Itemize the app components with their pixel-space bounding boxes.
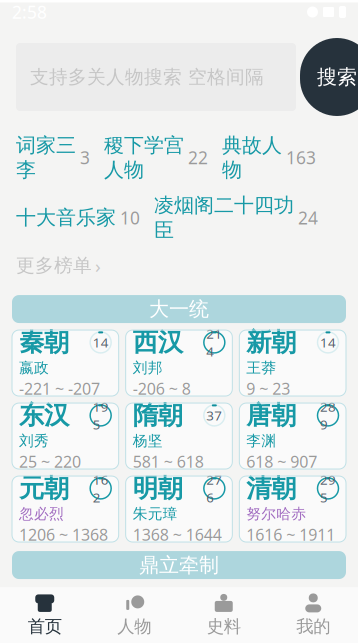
staticText: 214 <box>206 325 222 360</box>
button[interactable]: 清朝 <box>239 476 346 542</box>
staticText: 我的 <box>296 616 330 637</box>
staticText: 元朝 <box>19 473 69 504</box>
staticText: 295 <box>320 471 336 506</box>
button[interactable]: 东汉 <box>12 403 119 469</box>
button[interactable]: 明朝 <box>126 476 232 542</box>
button[interactable]: 唐朝 <box>239 403 346 469</box>
staticText: 276 <box>206 471 222 506</box>
button[interactable]: 西汉 <box>126 330 232 396</box>
staticText: 杨坚 <box>133 432 163 450</box>
staticText: 十大音乐家 <box>16 205 116 230</box>
staticText: 24 <box>298 206 318 229</box>
staticText: 清朝 <box>246 473 296 504</box>
staticText: 14 <box>320 334 336 351</box>
staticText: 37 <box>206 407 222 424</box>
staticText: -221 ~ -207 <box>19 378 100 399</box>
staticText: 289 <box>320 398 336 433</box>
staticText: 25 ~ 220 <box>19 451 81 472</box>
staticText: 163 <box>286 146 316 169</box>
button[interactable]: 隋朝 <box>126 403 232 469</box>
staticText: 10 <box>120 206 140 229</box>
button[interactable]: 凌烟阁二十四功臣 <box>154 193 318 242</box>
staticText: 史料 <box>207 616 241 637</box>
button[interactable]: 元朝 <box>12 476 119 542</box>
staticText: 2:58 <box>12 0 47 23</box>
staticText: 东汉 <box>19 400 69 431</box>
staticText: 3 <box>80 146 90 169</box>
staticText: › <box>95 253 101 278</box>
staticText: 刘秀 <box>19 432 49 450</box>
staticText: 大一统 <box>149 297 209 321</box>
staticText: 1616 ~ 1911 <box>246 524 335 545</box>
button[interactable]: 新朝 <box>239 330 346 396</box>
staticText: 王莽 <box>246 359 276 377</box>
staticText: 唐朝 <box>246 400 296 431</box>
staticText: 162 <box>93 471 109 506</box>
button[interactable]: 秦朝 <box>12 330 119 396</box>
button[interactable]: 史料 <box>179 589 268 641</box>
staticText: 词家三李 <box>16 133 76 182</box>
staticText: 秦朝 <box>19 327 69 358</box>
staticText: 努尔哈赤 <box>246 505 306 523</box>
staticText: 更多榜单 <box>16 254 92 277</box>
staticText: 凌烟阁二十四功臣 <box>154 193 294 242</box>
staticText: 195 <box>93 398 109 433</box>
staticText: 14 <box>93 334 109 351</box>
staticText: 618 ~ 907 <box>246 451 317 472</box>
staticText: 581 ~ 618 <box>133 451 204 472</box>
staticText: 嬴政 <box>19 359 49 377</box>
staticText: 首页 <box>28 616 62 637</box>
button[interactable]: 首页 <box>0 589 89 641</box>
button[interactable]: 更多榜单 <box>16 253 101 278</box>
staticText: 典故人物 <box>222 133 282 182</box>
button[interactable]: 典故人物 <box>222 133 316 182</box>
staticText: 朱元璋 <box>133 505 178 523</box>
staticText: 忽必烈 <box>19 505 64 523</box>
staticText: 1206 ~ 1368 <box>19 524 108 545</box>
staticText: 西汉 <box>133 327 183 358</box>
staticText: 22 <box>188 146 208 169</box>
button[interactable]: 搜索 <box>300 38 358 116</box>
button[interactable]: 稷下学宫人物 <box>104 133 208 182</box>
staticText: 1368 ~ 1644 <box>133 524 222 545</box>
staticText: 刘邦 <box>133 359 163 377</box>
button[interactable]: 十大音乐家 <box>16 205 140 230</box>
staticText: 支持多关人物搜索 空格间隔 <box>30 65 264 88</box>
staticText: 李渊 <box>246 432 276 450</box>
button[interactable]: 词家三李 <box>16 133 90 182</box>
staticText: 人物 <box>117 616 151 637</box>
staticText: 隋朝 <box>133 400 183 431</box>
staticText: -206 ~ 8 <box>133 378 191 399</box>
staticText: 稷下学宫人物 <box>104 133 184 182</box>
staticText: 9 ~ 23 <box>246 378 290 399</box>
button[interactable]: 人物 <box>89 589 179 641</box>
staticText: 明朝 <box>133 473 183 504</box>
staticText: 搜索 <box>317 65 357 89</box>
staticText: 鼎立牵制 <box>139 553 219 577</box>
staticText: 新朝 <box>246 327 296 358</box>
button[interactable]: 我的 <box>268 589 358 641</box>
